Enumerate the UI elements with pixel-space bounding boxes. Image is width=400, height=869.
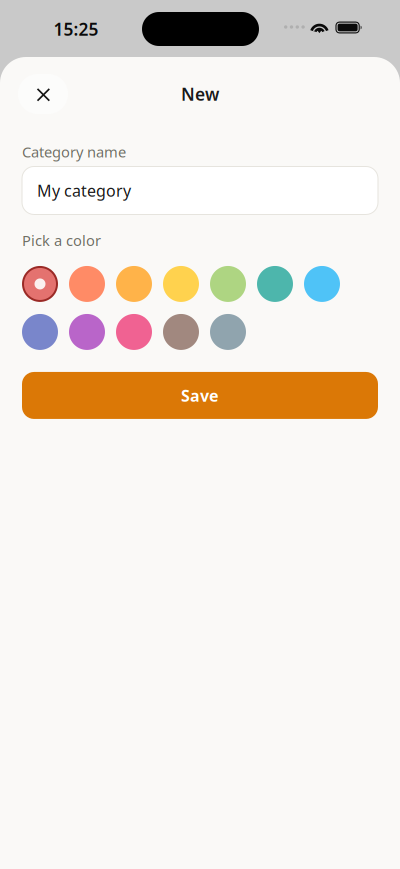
button[interactable]: Color option: [116, 314, 152, 350]
button[interactable]: Color option: [22, 314, 58, 350]
button[interactable]: Color option: [210, 266, 246, 302]
button[interactable]: Save: [22, 372, 378, 419]
staticText: Pick a color: [22, 230, 101, 250]
button[interactable]: Color option: [163, 266, 199, 302]
button[interactable]: Color option: [304, 266, 340, 302]
button[interactable]: Color option: [69, 314, 105, 350]
button[interactable]: Color option: [22, 266, 58, 302]
button[interactable]: Color option: [210, 314, 246, 350]
staticText: Save: [181, 385, 219, 406]
button[interactable]: Color option: [116, 266, 152, 302]
staticText: Category name: [22, 142, 126, 161]
staticText: My category: [37, 180, 131, 201]
button[interactable]: Close: [18, 74, 68, 114]
staticText: 15:25: [53, 17, 98, 40]
staticText: New: [181, 82, 219, 105]
button[interactable]: Color option: [257, 266, 293, 302]
button[interactable]: Color option: [163, 314, 199, 350]
button[interactable]: Color option: [69, 266, 105, 302]
